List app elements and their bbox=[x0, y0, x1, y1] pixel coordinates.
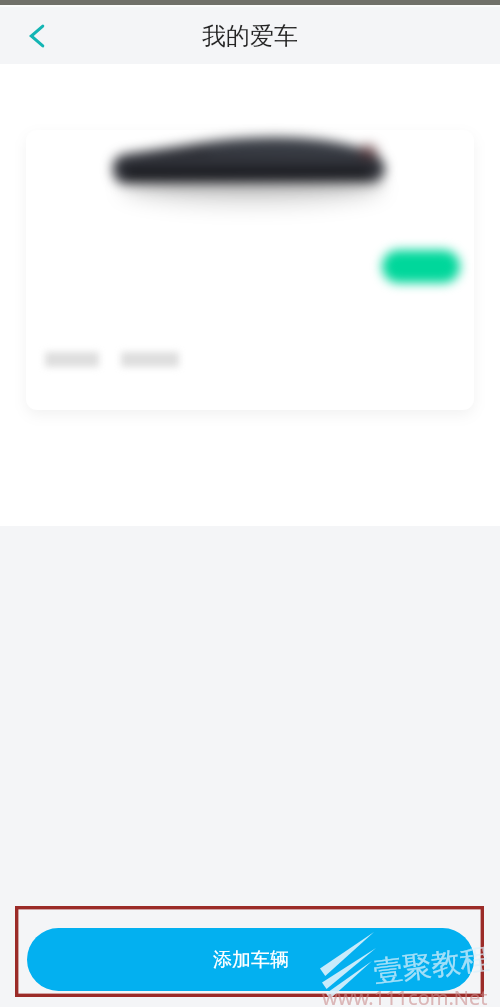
button[interactable]: Back bbox=[15, 13, 61, 59]
staticText: 添加车辆 bbox=[213, 948, 289, 972]
staticText: 壹聚教程 bbox=[371, 940, 491, 991]
staticText: www.111com.Net bbox=[322, 984, 488, 1007]
button[interactable]: 车辆详情 bbox=[26, 130, 474, 410]
button[interactable]: 添加车辆 bbox=[27, 928, 474, 991]
staticText: 我的爱车 bbox=[202, 21, 298, 51]
